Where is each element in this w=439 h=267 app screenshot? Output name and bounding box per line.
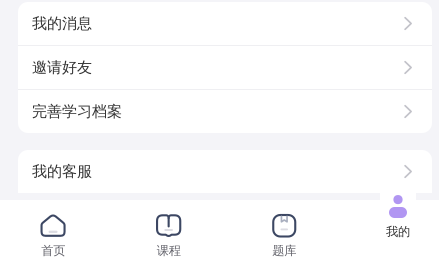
- staticText: 完善学习档案: [32, 102, 122, 121]
- staticText: 题库: [272, 243, 296, 258]
- staticText: 设置: [32, 206, 62, 225]
- staticText: 我的消息: [32, 14, 92, 33]
- staticText: 我的客服: [32, 162, 92, 181]
- button[interactable]: 我的消息: [18, 2, 432, 45]
- staticText: 我的: [386, 224, 410, 239]
- staticText: 首页: [41, 243, 65, 258]
- button[interactable]: 首页: [0, 200, 111, 267]
- button[interactable]: 题库: [226, 200, 342, 267]
- button[interactable]: 完善学习档案: [18, 90, 432, 133]
- button[interactable]: 设置: [18, 194, 432, 237]
- button[interactable]: 我的客服: [18, 150, 432, 193]
- button[interactable]: 课程: [111, 200, 226, 267]
- staticText: 邀请好友: [32, 58, 92, 77]
- button[interactable]: 我的: [380, 193, 416, 267]
- staticText: 课程: [157, 243, 181, 258]
- button[interactable]: 邀请好友: [18, 46, 432, 89]
